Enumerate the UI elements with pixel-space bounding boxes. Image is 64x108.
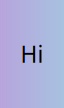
staticText: Hi [20, 39, 43, 69]
